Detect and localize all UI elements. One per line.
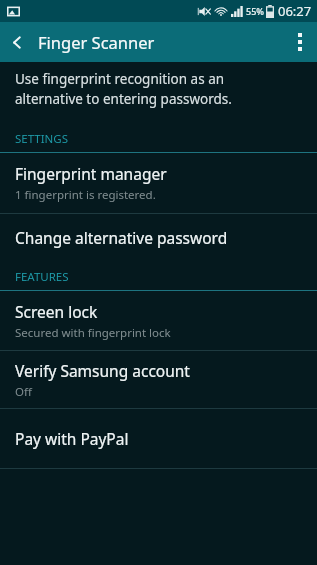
staticText: Secured with fingerprint lock [15, 325, 171, 341]
staticText: SETTINGS [15, 131, 69, 147]
staticText: Screen lock [15, 301, 98, 322]
staticText: Verify Samsung account [15, 360, 190, 381]
staticText: 55% [246, 5, 264, 17]
button[interactable]: Change alternative password [0, 214, 317, 260]
button[interactable]: Back [0, 25, 34, 59]
button[interactable]: Screen lock [0, 291, 317, 350]
staticText: Finger Scanner [38, 31, 155, 53]
staticText: Pay with PayPal [15, 428, 129, 449]
button[interactable]: Verify Samsung account [0, 351, 317, 408]
staticText: Fingerprint manager [15, 163, 167, 184]
button[interactable]: Pay with PayPal [0, 409, 317, 468]
staticText: 06:27 [278, 2, 312, 20]
staticText: 1 fingerprint is registered. [15, 187, 156, 203]
staticText: Off [15, 384, 32, 400]
button[interactable]: More options [283, 22, 317, 62]
staticText: Change alternative password [15, 227, 228, 248]
button[interactable]: Fingerprint manager [0, 153, 317, 213]
staticText: Use fingerprint recognition as an altern… [15, 70, 232, 108]
staticText: FEATURES [15, 269, 69, 285]
